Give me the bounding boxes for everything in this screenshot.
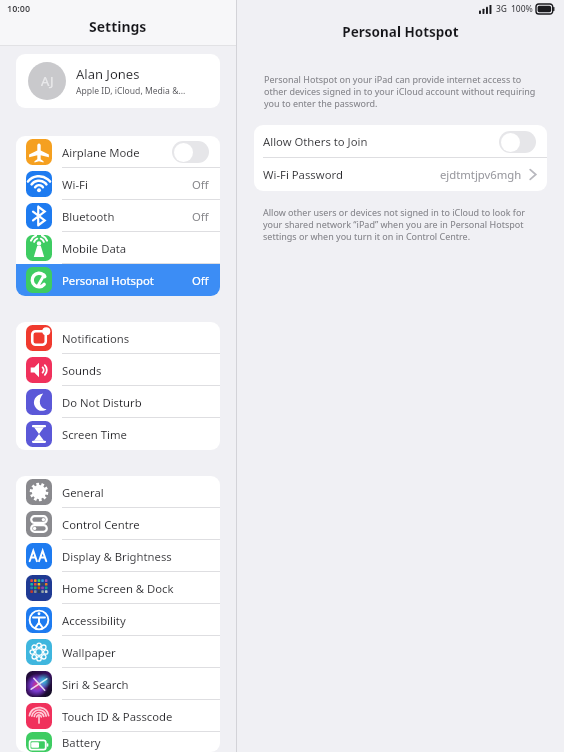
staticText: 3G bbox=[496, 3, 508, 15]
button[interactable]: Allow Others to Join bbox=[254, 125, 547, 158]
button[interactable]: Accessibility bbox=[16, 604, 220, 636]
button[interactable]: Touch ID & Passcode bbox=[16, 700, 220, 732]
staticText: Wallpaper bbox=[62, 645, 116, 660]
staticText: Siri & Search bbox=[62, 677, 129, 692]
staticText: Sounds bbox=[62, 363, 102, 378]
button[interactable]: Control Centre bbox=[16, 508, 220, 540]
button[interactable]: Do Not Disturb bbox=[16, 386, 220, 418]
staticText: Off bbox=[192, 273, 209, 288]
staticText: Personal Hotspot bbox=[237, 23, 564, 41]
button[interactable]: Wi-Fi Password bbox=[254, 158, 547, 191]
staticText: Battery bbox=[62, 735, 101, 750]
staticText: Wi-Fi Password bbox=[263, 167, 343, 182]
button[interactable]: Notifications bbox=[16, 322, 220, 354]
staticText: Allow other users or devices not signed … bbox=[263, 206, 542, 242]
button[interactable]: Wallpaper bbox=[16, 636, 220, 668]
staticText: Personal Hotspot on your iPad can provid… bbox=[264, 73, 538, 109]
button[interactable]: Siri & Search bbox=[16, 668, 220, 700]
staticText: Airplane Mode bbox=[62, 145, 140, 160]
staticText: Allow Others to Join bbox=[263, 134, 368, 149]
staticText: Screen Time bbox=[62, 427, 127, 442]
staticText: Wi-Fi bbox=[62, 177, 88, 192]
button[interactable]: Toggle off bbox=[172, 141, 209, 163]
button[interactable]: Home Screen & Dock bbox=[16, 572, 220, 604]
button[interactable]: Screen Time bbox=[16, 418, 220, 450]
staticText: Alan Jones bbox=[76, 65, 140, 83]
staticText: Notifications bbox=[62, 331, 130, 346]
button[interactable]: General bbox=[16, 476, 220, 508]
staticText: 100% bbox=[511, 3, 533, 15]
button[interactable]: Bluetooth bbox=[16, 200, 220, 232]
button[interactable]: Sounds bbox=[16, 354, 220, 386]
button[interactable]: Battery bbox=[16, 732, 220, 752]
staticText: Off bbox=[192, 177, 209, 192]
staticText: 10:00 bbox=[7, 2, 31, 14]
staticText: ejdtmtjpv6mgh bbox=[440, 167, 522, 182]
staticText: Accessibility bbox=[62, 613, 126, 628]
staticText: General bbox=[62, 485, 104, 500]
staticText: Personal Hotspot bbox=[62, 273, 154, 288]
staticText: AJ bbox=[41, 72, 54, 90]
staticText: Touch ID & Passcode bbox=[62, 709, 173, 724]
staticText: Control Centre bbox=[62, 517, 140, 532]
staticText: Do Not Disturb bbox=[62, 395, 142, 410]
button[interactable]: Wi-Fi bbox=[16, 168, 220, 200]
staticText: Settings bbox=[89, 17, 147, 36]
button[interactable]: Display & Brightness bbox=[16, 540, 220, 572]
button[interactable]: Mobile Data bbox=[16, 232, 220, 264]
staticText: Display & Brightness bbox=[62, 549, 172, 564]
button[interactable]: Airplane Mode bbox=[16, 136, 220, 168]
staticText: Home Screen & Dock bbox=[62, 581, 174, 596]
button[interactable]: Toggle off bbox=[499, 131, 536, 153]
button[interactable]: AJ bbox=[16, 54, 220, 108]
staticText: Mobile Data bbox=[62, 241, 127, 256]
staticText: Apple ID, iCloud, Media &... bbox=[76, 85, 186, 97]
button[interactable]: Personal Hotspot bbox=[16, 264, 220, 296]
staticText: Bluetooth bbox=[62, 209, 115, 224]
staticText: Off bbox=[192, 209, 209, 224]
